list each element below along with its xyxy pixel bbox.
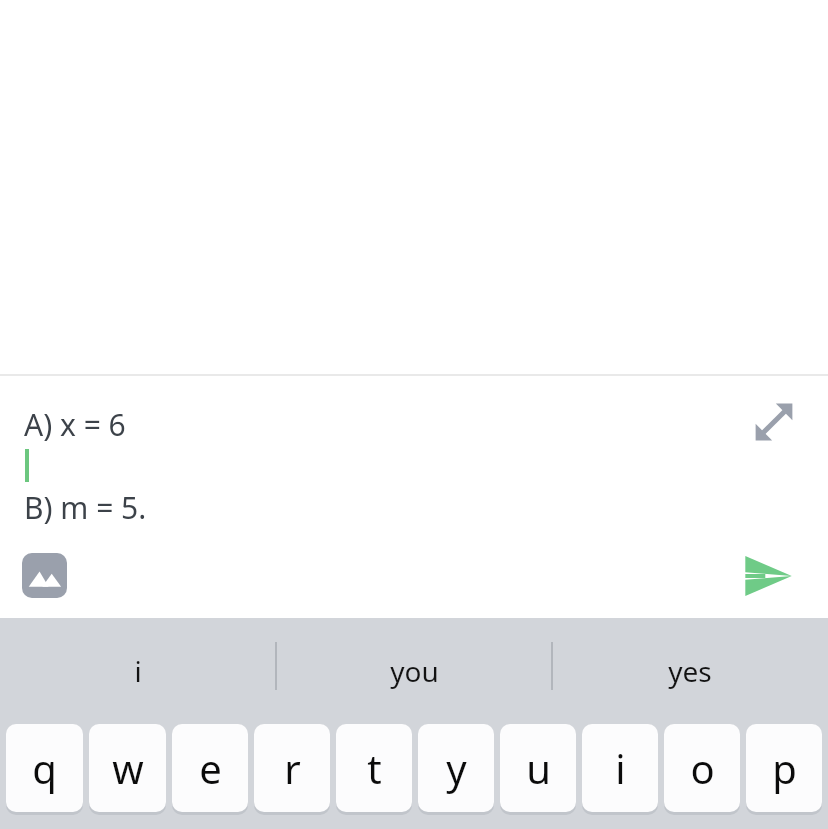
staticText: p: [772, 741, 797, 795]
staticText: u: [526, 741, 551, 795]
button[interactable]: q: [6, 724, 83, 812]
staticText: q: [32, 741, 57, 795]
button[interactable]: o: [664, 724, 740, 812]
button[interactable]: you: [276, 618, 552, 724]
staticText: you: [390, 652, 439, 690]
staticText: B) m = 5.: [24, 487, 147, 528]
staticText: e: [199, 741, 222, 795]
button[interactable]: e: [172, 724, 248, 812]
staticText: A) x = 6: [24, 404, 126, 445]
button[interactable]: Insert image: [21, 552, 67, 598]
staticText: w: [112, 741, 144, 795]
staticText: i: [615, 741, 626, 795]
button[interactable]: r: [254, 724, 330, 812]
button[interactable]: Send: [738, 546, 798, 606]
button[interactable]: yes: [552, 618, 828, 724]
button[interactable]: t: [336, 724, 412, 812]
staticText: i: [134, 652, 142, 690]
staticText: y: [446, 741, 467, 795]
button[interactable]: i: [582, 724, 658, 812]
button[interactable]: A) x = 6: [24, 404, 708, 528]
staticText: o: [690, 741, 715, 795]
button[interactable]: Expand compose box: [748, 396, 800, 448]
button[interactable]: u: [500, 724, 576, 812]
button[interactable]: w: [89, 724, 166, 812]
staticText: t: [367, 741, 382, 795]
button[interactable]: p: [746, 724, 822, 812]
staticText: r: [284, 741, 301, 795]
button[interactable]: y: [418, 724, 494, 812]
staticText: yes: [668, 652, 712, 690]
button[interactable]: i: [0, 618, 276, 724]
